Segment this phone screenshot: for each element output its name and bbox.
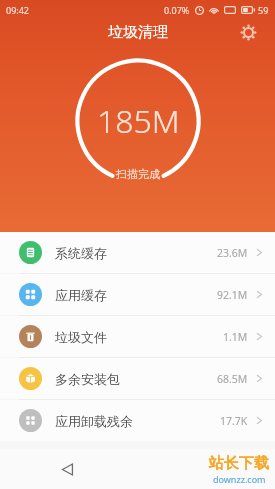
staticText: 垃圾清理 bbox=[108, 23, 168, 42]
staticText: 1.1M bbox=[223, 330, 248, 344]
staticText: 17.7K bbox=[220, 414, 248, 428]
staticText: downzz.com bbox=[213, 473, 266, 485]
staticText: 应用缓存 bbox=[55, 287, 107, 303]
button[interactable]: 多余安装包 bbox=[0, 358, 275, 399]
button[interactable]: Back bbox=[52, 454, 82, 484]
staticText: 多余安装包 bbox=[55, 371, 120, 387]
staticText: 185M bbox=[97, 99, 180, 143]
staticText: 09:42 bbox=[6, 4, 30, 16]
staticText: 68.5M bbox=[217, 372, 248, 386]
button[interactable]: 系统缓存 bbox=[0, 232, 275, 273]
button[interactable]: Settings bbox=[235, 20, 261, 44]
button[interactable]: 应用缓存 bbox=[0, 274, 275, 315]
staticText: 0.07% bbox=[164, 4, 190, 16]
staticText: 系统缓存 bbox=[55, 245, 107, 261]
staticText: 站长下载 bbox=[209, 454, 269, 473]
staticText: 垃圾文件 bbox=[55, 329, 107, 345]
staticText: 92.1M bbox=[217, 288, 248, 302]
staticText: 23.6M bbox=[217, 246, 248, 260]
staticText: 59 bbox=[258, 4, 269, 16]
button[interactable]: 应用卸载残余 bbox=[0, 400, 275, 441]
staticText: 应用卸载残余 bbox=[55, 413, 133, 429]
button[interactable]: 垃圾文件 bbox=[0, 316, 275, 357]
staticText: 扫描完成 bbox=[116, 167, 160, 181]
